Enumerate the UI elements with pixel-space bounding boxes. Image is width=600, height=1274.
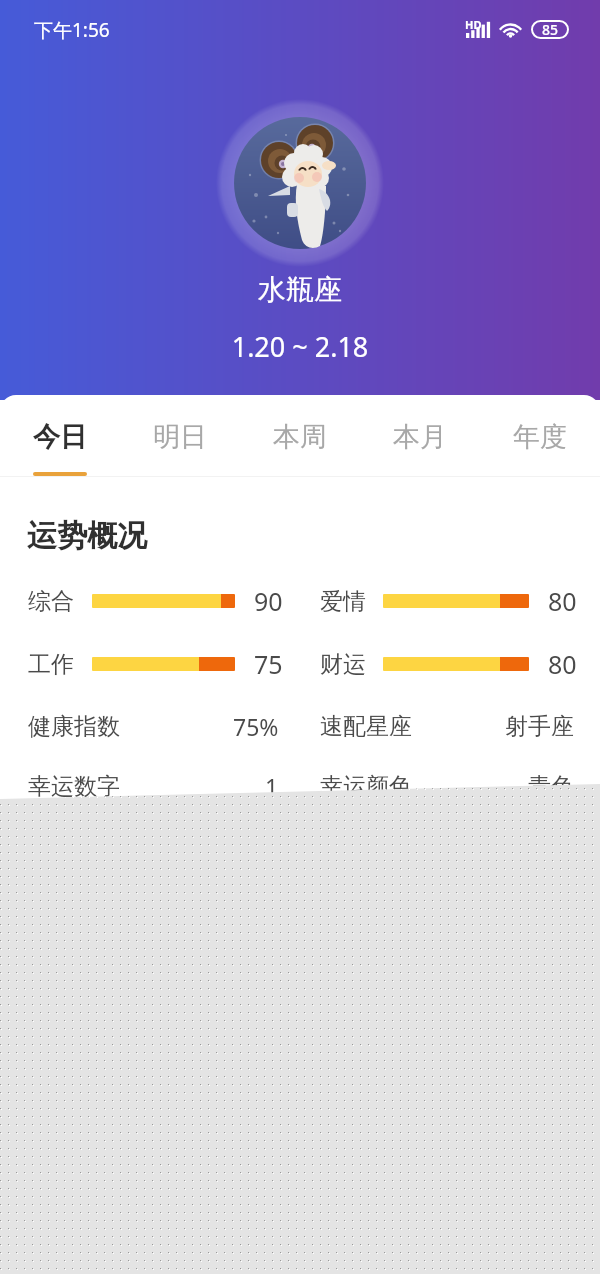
- staticText: 速配星座: [320, 712, 412, 741]
- staticText: 综合: [28, 587, 74, 616]
- staticText: 运势概况: [27, 517, 147, 555]
- button[interactable]: 财运: [320, 646, 588, 682]
- staticText: 射手座: [505, 712, 574, 741]
- button[interactable]: 年度: [480, 395, 600, 477]
- staticText: 85: [542, 20, 559, 39]
- button[interactable]: 本月: [360, 395, 480, 477]
- staticText: 1.20 ~ 2.18: [0, 328, 600, 365]
- staticText: 明日: [153, 420, 207, 454]
- staticText: 1: [265, 771, 279, 802]
- staticText: 80: [548, 584, 577, 618]
- staticText: 年度: [513, 420, 567, 454]
- button[interactable]: 工作: [28, 646, 294, 682]
- staticText: 幸运数字: [28, 772, 120, 801]
- button[interactable]: 速配星座: [320, 708, 574, 744]
- staticText: 今日: [33, 420, 87, 454]
- staticText: 本周: [273, 420, 327, 454]
- button[interactable]: 综合: [28, 583, 294, 619]
- staticText: HD: [465, 17, 482, 32]
- button[interactable]: 本周: [240, 395, 360, 477]
- staticText: 水瓶座: [0, 272, 600, 307]
- other: Battery 85 percent: [531, 20, 569, 39]
- staticText: 75%: [233, 711, 279, 742]
- staticText: 本月: [393, 420, 447, 454]
- other: Wi-Fi: [499, 20, 522, 39]
- staticText: 健康指数: [28, 712, 120, 741]
- staticText: 下午1:56: [34, 17, 110, 43]
- staticText: 青色: [528, 772, 574, 801]
- button[interactable]: 健康指数: [28, 708, 279, 744]
- staticText: 90: [254, 584, 283, 618]
- staticText: 爱情: [320, 587, 366, 616]
- button[interactable]: 幸运数字: [28, 768, 279, 804]
- staticText: 财运: [320, 650, 366, 679]
- button[interactable]: 今日: [0, 395, 120, 477]
- staticText: 75: [254, 647, 283, 681]
- button[interactable]: 明日: [120, 395, 240, 477]
- other: Signal strength: [462, 19, 492, 39]
- staticText: 工作: [28, 650, 74, 679]
- button[interactable]: 爱情: [320, 583, 588, 619]
- staticText: 80: [548, 647, 577, 681]
- staticText: 幸运颜色: [320, 772, 412, 801]
- button[interactable]: 幸运颜色: [320, 768, 574, 804]
